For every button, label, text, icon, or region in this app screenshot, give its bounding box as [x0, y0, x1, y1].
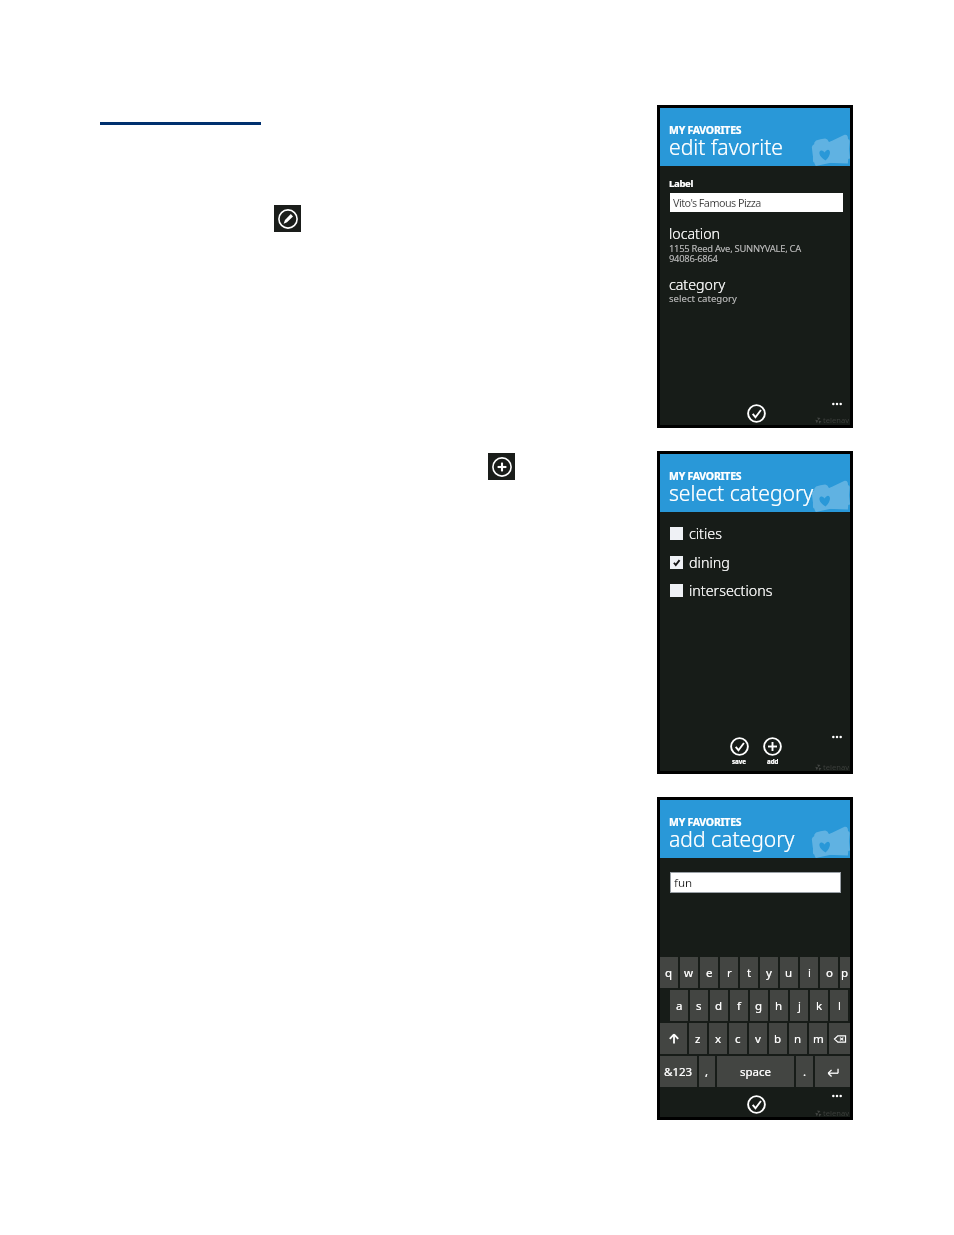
button[interactable]: More options: [828, 732, 846, 742]
button[interactable]: r: [720, 957, 738, 988]
staticText: s: [696, 998, 702, 1014]
staticText: telenav: [823, 415, 850, 425]
button[interactable]: cities: [670, 524, 830, 543]
button[interactable]: u: [780, 957, 798, 988]
button[interactable]: o: [820, 957, 838, 988]
button[interactable]: d: [710, 990, 728, 1021]
button[interactable]: b: [769, 1023, 787, 1054]
button[interactable]: g: [750, 990, 768, 1021]
button[interactable]: t: [740, 957, 758, 988]
button[interactable]: q: [660, 957, 678, 988]
staticText: .: [803, 1064, 807, 1080]
staticText: z: [695, 1031, 701, 1047]
button[interactable]: l: [830, 990, 848, 1021]
staticText: h: [775, 998, 783, 1014]
staticText: t: [747, 965, 752, 981]
button[interactable]: &123: [660, 1056, 697, 1087]
staticText: g: [755, 998, 763, 1014]
staticText: space: [740, 1064, 772, 1080]
staticText: telenav: [823, 1108, 850, 1118]
button[interactable]: fun: [671, 873, 840, 892]
button[interactable]: j: [790, 990, 808, 1021]
staticText: location: [669, 224, 720, 243]
staticText: MY FAVORITES: [669, 469, 742, 483]
staticText: c: [735, 1031, 741, 1047]
staticText: MY FAVORITES: [669, 815, 742, 829]
staticText: m: [813, 1031, 824, 1047]
button[interactable]: .: [796, 1056, 813, 1087]
staticText: save: [732, 757, 747, 765]
button[interactable]: Add: [488, 453, 515, 480]
staticText: a: [676, 998, 683, 1014]
staticText: add category: [669, 824, 795, 853]
button[interactable]: Save: [747, 1095, 766, 1114]
staticText: j: [798, 998, 801, 1014]
button[interactable]: Shift: [660, 1023, 687, 1054]
button[interactable]: intersections: [670, 581, 830, 600]
staticText: f: [737, 998, 741, 1014]
staticText: r: [727, 965, 732, 981]
button[interactable]: Add: [763, 737, 782, 756]
button[interactable]: Backspace: [829, 1023, 850, 1054]
button[interactable]: Vito's Famous Pizza: [670, 193, 843, 212]
staticText: cities: [689, 524, 722, 543]
staticText: i: [808, 965, 811, 981]
staticText: b: [774, 1031, 782, 1047]
staticText: edit favorite: [669, 132, 784, 161]
staticText: u: [785, 965, 793, 981]
staticText: e: [706, 965, 713, 981]
button[interactable]: f: [730, 990, 748, 1021]
staticText: intersections: [689, 581, 773, 600]
button[interactable]: space: [717, 1056, 794, 1087]
staticText: p: [841, 965, 849, 981]
button[interactable]: e: [700, 957, 718, 988]
staticText: ,: [705, 1064, 709, 1080]
staticText: select category: [669, 478, 814, 507]
staticText: w: [684, 965, 694, 981]
button[interactable]: a: [670, 990, 688, 1021]
button[interactable]: More options: [828, 1091, 846, 1101]
button[interactable]: n: [789, 1023, 807, 1054]
button[interactable]: More options: [828, 399, 846, 409]
staticText: Label: [669, 177, 694, 190]
staticText: x: [715, 1031, 722, 1047]
button[interactable]: s: [690, 990, 708, 1021]
staticText: fun: [674, 875, 693, 891]
button[interactable]: ,: [699, 1056, 715, 1087]
staticText: y: [766, 965, 772, 981]
staticText: dining: [689, 553, 730, 572]
staticText: 1155 Reed Ave, SUNNYVALE, CA 94086-6864: [669, 242, 801, 265]
button[interactable]: dining: [670, 553, 830, 572]
staticText: telenav: [823, 762, 850, 772]
staticText: add: [767, 757, 779, 765]
button[interactable]: c: [729, 1023, 747, 1054]
staticText: category: [669, 275, 726, 294]
button[interactable]: Enter: [815, 1056, 850, 1087]
button[interactable]: k: [810, 990, 828, 1021]
button[interactable]: Edit: [274, 205, 301, 232]
staticText: Vito's Famous Pizza: [673, 195, 761, 210]
staticText: o: [826, 965, 833, 981]
button[interactable]: m: [809, 1023, 827, 1054]
staticText: &123: [664, 1064, 693, 1080]
staticText: l: [838, 998, 841, 1014]
button[interactable]: x: [709, 1023, 727, 1054]
staticText: d: [715, 998, 723, 1014]
staticText: select category: [669, 292, 737, 305]
staticText: q: [665, 965, 673, 981]
button[interactable]: h: [770, 990, 788, 1021]
staticText: n: [794, 1031, 802, 1047]
button[interactable]: p: [840, 957, 850, 988]
button[interactable]: w: [680, 957, 698, 988]
button[interactable]: z: [689, 1023, 707, 1054]
button[interactable]: Save: [747, 404, 766, 423]
staticText: MY FAVORITES: [669, 123, 742, 137]
button[interactable]: i: [800, 957, 818, 988]
staticText: k: [816, 998, 823, 1014]
button[interactable]: v: [749, 1023, 767, 1054]
staticText: v: [755, 1031, 761, 1047]
button[interactable]: y: [760, 957, 778, 988]
button[interactable]: Save: [730, 737, 749, 756]
